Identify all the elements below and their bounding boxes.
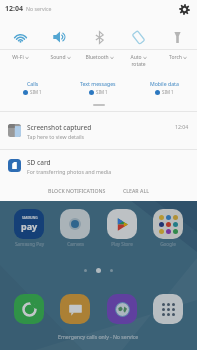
button[interactable]: Screenshot captured — [0, 112, 197, 148]
staticText: Emergency calls only · No service — [58, 333, 139, 340]
staticText: Google — [160, 241, 176, 247]
staticText: For transferring photos and media — [27, 168, 112, 175]
staticText: Screenshot captured — [27, 123, 92, 132]
button[interactable]: Mobile data — [131, 80, 197, 95]
staticText: Bluetooth — [85, 54, 109, 61]
button[interactable]: Auto rotate — [119, 25, 158, 49]
staticText: No service — [26, 5, 52, 12]
button[interactable]: Settings — [176, 1, 192, 17]
staticText: CLEAR ALL — [123, 187, 149, 194]
staticText: Tap here to view details — [27, 133, 85, 140]
button[interactable]: Sound — [40, 54, 80, 61]
button[interactable]: Apps — [151, 294, 185, 324]
staticText: Calls — [27, 80, 39, 87]
button[interactable]: CLEAR ALL — [119, 184, 153, 197]
button[interactable]: Bluetooth — [80, 25, 119, 49]
staticText: SAMSUNG — [22, 216, 38, 220]
staticText: Sound — [50, 54, 66, 61]
staticText: pay — [21, 220, 38, 232]
staticText: 12:04 — [5, 4, 23, 14]
staticText: BLOCK NOTIFICATIONS — [48, 187, 106, 194]
staticText: Play Store — [111, 241, 133, 247]
staticText: Mobile data — [150, 80, 179, 87]
button[interactable]: Internet — [105, 294, 139, 324]
button[interactable]: Samsung Pay — [12, 209, 46, 247]
button[interactable]: Calls — [0, 80, 65, 95]
button[interactable]: Bluetooth — [80, 54, 119, 61]
staticText: SIM 1 — [96, 89, 108, 95]
staticText: rotate — [131, 61, 146, 68]
button[interactable]: Wi-Fi — [0, 25, 40, 49]
staticText: SIM 1 — [30, 89, 42, 95]
staticText: SIM 1 — [162, 89, 174, 95]
button[interactable]: Torch — [158, 54, 197, 61]
button[interactable]: SD card — [0, 150, 197, 182]
button[interactable]: Text messages — [65, 80, 131, 95]
staticText: Text messages — [80, 80, 116, 87]
button[interactable]: Auto — [119, 54, 158, 68]
staticText: Camera — [67, 241, 84, 247]
button[interactable]: Torch — [158, 25, 197, 49]
button[interactable]: Phone — [12, 294, 46, 324]
staticText: Auto — [130, 54, 142, 61]
staticText: Wi-Fi — [12, 54, 24, 61]
staticText: SD card — [27, 158, 51, 167]
staticText: 12:04 — [175, 123, 189, 130]
button[interactable]: Play Store — [105, 209, 139, 247]
staticText: Samsung Pay — [15, 241, 44, 247]
button[interactable]: Google folder — [151, 209, 185, 247]
button[interactable]: Sound — [40, 25, 80, 49]
button[interactable]: Camera — [58, 209, 92, 247]
button[interactable]: BLOCK NOTIFICATIONS — [44, 184, 110, 197]
button[interactable]: Wi-Fi — [0, 54, 40, 61]
staticText: Torch — [169, 54, 182, 61]
button[interactable]: Messages — [58, 294, 92, 324]
